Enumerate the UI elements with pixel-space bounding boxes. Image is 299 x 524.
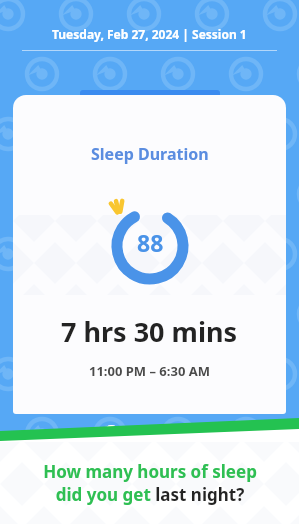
staticText: Tuesday, Feb 27, 2024 | Session 1 <box>52 26 247 42</box>
staticText: Sleep Duration <box>91 143 209 165</box>
staticText: Great work! <box>105 419 194 439</box>
staticText: 11:00 PM – 6:30 AM <box>89 362 210 380</box>
staticText: 88 <box>137 227 164 258</box>
button[interactable]: Sleep Duration <box>13 95 286 414</box>
staticText: 7 hrs 30 mins <box>61 313 238 350</box>
button[interactable]: How many hours of sleep did you get last… <box>0 460 299 506</box>
staticText: How many hours of sleep did you get last… <box>43 460 257 506</box>
